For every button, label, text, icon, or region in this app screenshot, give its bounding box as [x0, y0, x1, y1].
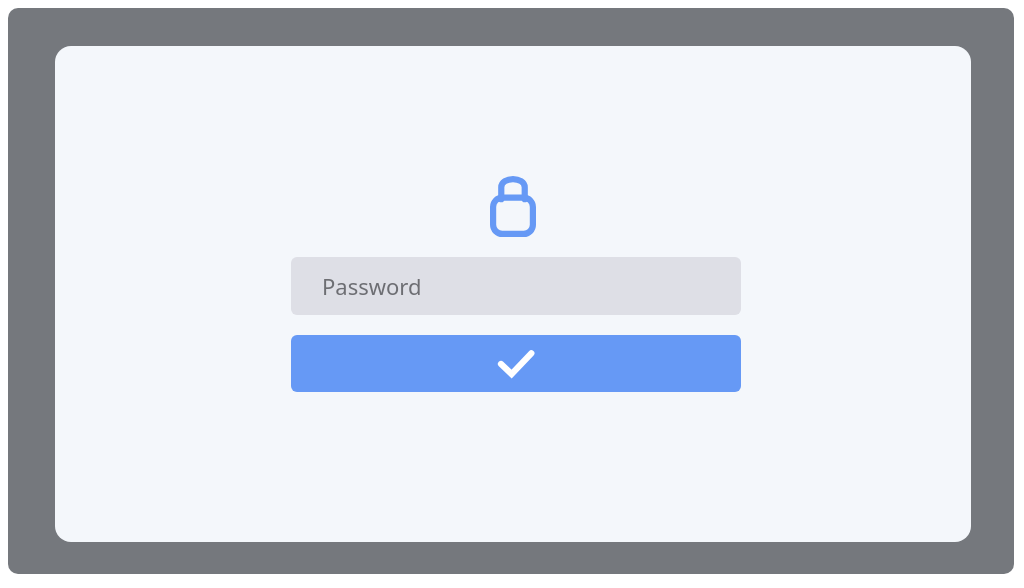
other: Locked	[472, 176, 554, 238]
button[interactable]: Password	[291, 257, 741, 315]
staticText: Password	[322, 271, 422, 301]
button[interactable]: Submit password	[291, 335, 741, 392]
